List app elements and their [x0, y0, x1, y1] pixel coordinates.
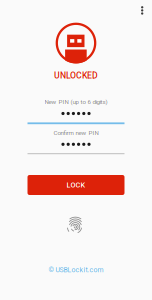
- staticText: UNLOCKED: [54, 70, 98, 81]
- button[interactable]: LOCK: [27, 175, 124, 195]
- staticText: © USBLockit.com: [48, 266, 103, 274]
- button[interactable]: More options: [133, 1, 151, 19]
- staticText: LOCK: [66, 181, 85, 189]
- button[interactable]: Unlock with fingerprint: [62, 210, 90, 238]
- staticText: Confirm new PIN: [53, 129, 98, 136]
- staticText: New PIN (up to 6 digits): [44, 98, 107, 106]
